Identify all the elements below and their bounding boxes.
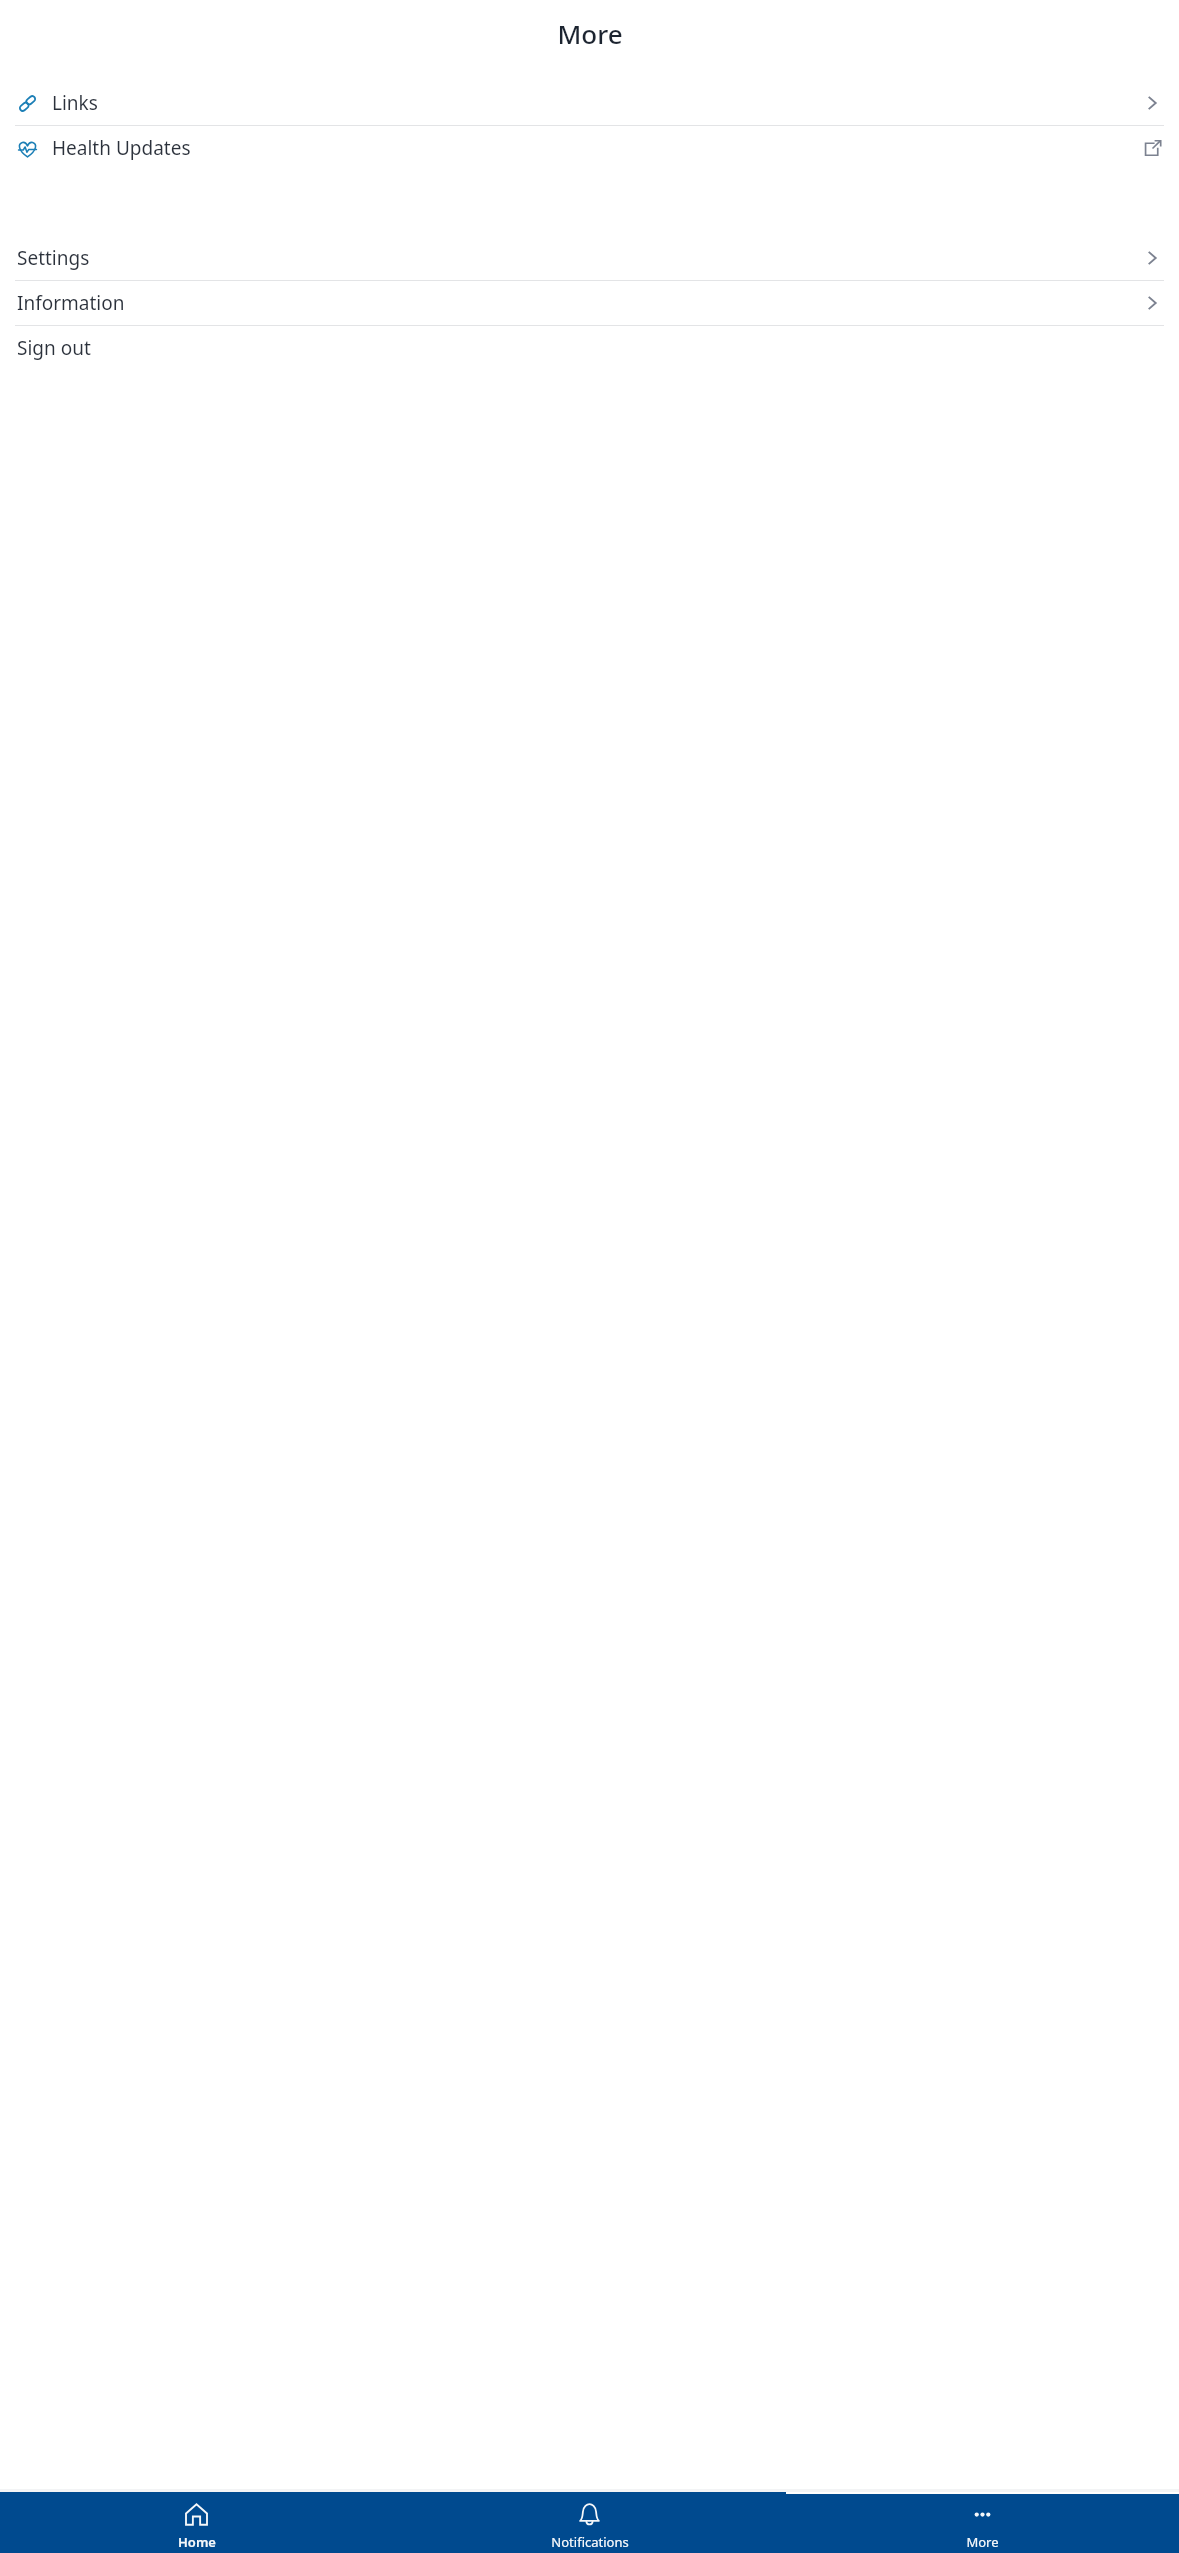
button[interactable]: More — [786, 2492, 1179, 2553]
button[interactable]: Settings — [0, 236, 1179, 280]
button[interactable]: Sign out — [0, 326, 1179, 370]
button[interactable]: Information — [0, 281, 1179, 325]
staticText: More — [557, 16, 623, 51]
button[interactable]: Notifications — [393, 2492, 786, 2553]
button[interactable]: Health Updates — [0, 126, 1179, 170]
button[interactable]: Links — [0, 81, 1179, 125]
staticText: Home — [178, 2533, 216, 2551]
staticText: Information — [17, 290, 1141, 316]
staticText: Sign out — [17, 335, 1163, 361]
staticText: More — [966, 2533, 999, 2551]
staticText: Settings — [17, 245, 1141, 271]
staticText: Notifications — [551, 2533, 629, 2551]
staticText: Links — [52, 90, 1141, 116]
button[interactable]: Home — [0, 2492, 393, 2553]
staticText: Health Updates — [52, 135, 1142, 161]
